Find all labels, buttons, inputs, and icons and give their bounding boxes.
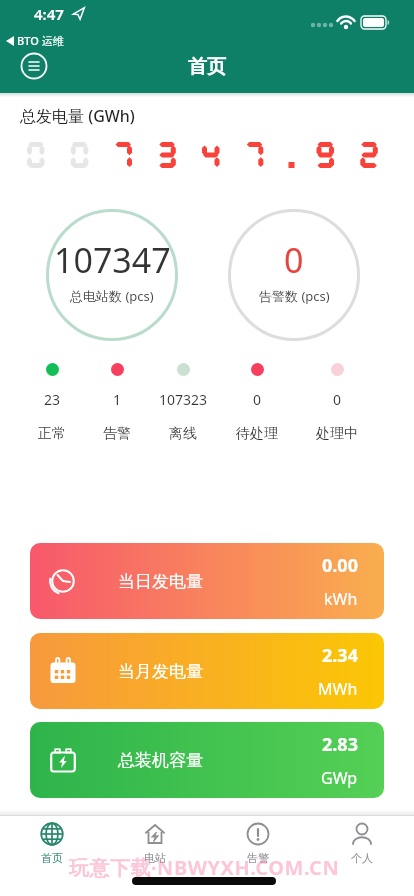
staticText: 107323 (159, 390, 208, 409)
staticText: 告警 (247, 851, 269, 865)
staticText: 处理中 (316, 425, 358, 443)
staticText: 首页 (41, 851, 63, 865)
staticText: 0 (284, 237, 304, 283)
staticText: 23 (44, 390, 61, 409)
button[interactable]: 个人 (310, 816, 414, 896)
staticText: 总电站数 (pcs) (70, 287, 154, 305)
staticText: 离线 (169, 425, 197, 443)
staticText: 当月发电量 (118, 661, 203, 682)
staticText: 告警数 (pcs) (259, 287, 330, 305)
staticText: 电站 (144, 851, 166, 865)
button[interactable]: 107347 (46, 209, 178, 341)
staticText: 0 (333, 390, 342, 409)
button[interactable]: 总装机容量 (30, 722, 384, 798)
staticText: 0.00 (322, 553, 358, 578)
staticText: GWp (321, 767, 358, 789)
staticText: kWh (324, 588, 358, 610)
staticText: 2.83 (322, 732, 358, 757)
staticText: 总发电量 (GWh) (20, 105, 135, 127)
staticText: BTO 运维 (17, 33, 64, 48)
staticText: 个人 (351, 851, 373, 865)
button[interactable]: 0 (228, 209, 360, 341)
staticText: 总装机容量 (118, 750, 203, 771)
staticText: 1 (113, 390, 122, 409)
button[interactable]: 电站 (103, 816, 206, 896)
staticText: 告警 (103, 425, 131, 443)
staticText: 0 (253, 390, 262, 409)
staticText: 正常 (38, 425, 66, 443)
staticText: MWh (318, 678, 358, 700)
staticText: 2.34 (322, 643, 358, 668)
staticText: 当日发电量 (118, 571, 203, 592)
staticText: 玩意下载·NBWYXH.COM.CN (69, 854, 340, 881)
button[interactable]: 告警 (206, 816, 310, 896)
staticText: 首页 (188, 55, 226, 79)
button[interactable]: 当日发电量 (30, 543, 384, 619)
staticText: 待处理 (236, 425, 278, 443)
button[interactable]: 首页 (0, 816, 103, 896)
staticText: 4:47 (34, 4, 64, 24)
button[interactable] (20, 52, 48, 80)
button[interactable]: 当月发电量 (30, 633, 384, 709)
staticText: 107347 (54, 237, 171, 283)
